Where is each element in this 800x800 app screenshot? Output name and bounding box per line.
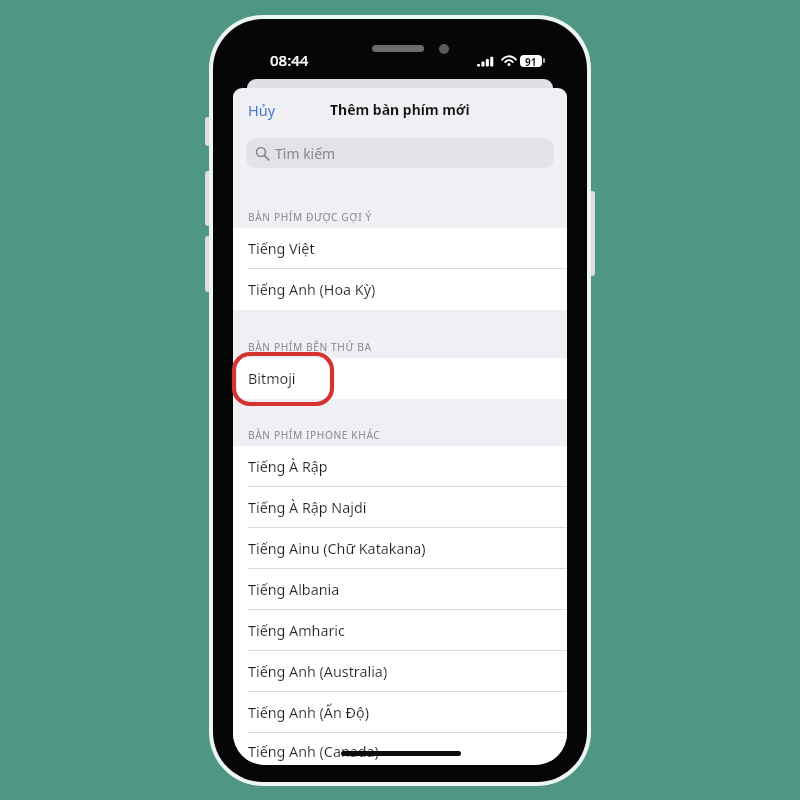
button[interactable]: Tiếng À Rập Najdi — [233, 487, 567, 528]
staticText: Tiếng Ainu (Chữ Katakana) — [248, 539, 426, 558]
staticText: Tiếng À Rập Najdi — [248, 498, 367, 517]
button[interactable]: Tiếng Anh (Australia) — [233, 651, 567, 692]
staticText: 91 — [525, 55, 537, 67]
button[interactable]: Tiếng À Rập — [233, 446, 567, 487]
staticText: Tiếng Albania — [248, 580, 340, 599]
button[interactable]: Tiếng Albania — [233, 569, 567, 610]
button[interactable]: Search keyboards — [246, 138, 554, 168]
staticText: Tiếng Việt — [248, 239, 315, 258]
staticText: Bitmoji — [248, 369, 296, 388]
staticText: BÀN PHÍM IPHONE KHÁC — [248, 428, 381, 442]
button[interactable]: Tiếng Việt — [233, 228, 567, 269]
button[interactable]: Tiếng Anh (Canada) — [233, 733, 567, 765]
button[interactable]: Tiếng Ainu (Chữ Katakana) — [233, 528, 567, 569]
button[interactable]: Tiếng Anh (Hoa Kỳ) — [233, 269, 567, 310]
staticText: Tiếng Amharic — [248, 621, 345, 640]
button[interactable]: Tiếng Amharic — [233, 610, 567, 651]
button[interactable]: Hủy — [242, 95, 282, 125]
other: Highlighted Bitmoji keyboard — [232, 352, 334, 406]
staticText: 08:44 — [270, 50, 309, 70]
staticText: Hủy — [248, 100, 276, 120]
staticText: Tiếng Anh (Canada) — [248, 742, 379, 761]
staticText: BÀN PHÍM BÊN THỨ BA — [248, 340, 372, 354]
staticText: Thêm bàn phím mới — [330, 100, 470, 119]
staticText: BÀN PHÍM ĐƯỢC GỢI Ý — [248, 210, 372, 224]
button[interactable]: Bitmoji — [233, 358, 567, 399]
button[interactable]: Tiếng Anh (Ấn Độ) — [233, 692, 567, 733]
staticText: Tiếng À Rập — [248, 457, 328, 476]
staticText: Tiếng Anh (Ấn Độ) — [248, 703, 369, 722]
staticText: Tìm kiếm — [275, 144, 336, 163]
staticText: Tiếng Anh (Australia) — [248, 662, 388, 681]
staticText: Tiếng Anh (Hoa Kỳ) — [248, 280, 376, 299]
